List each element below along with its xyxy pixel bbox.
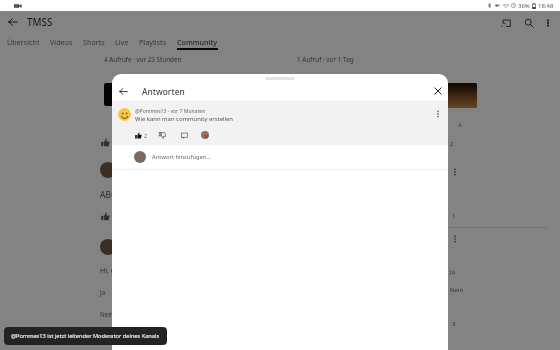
button[interactable]: Community [172, 33, 223, 52]
button[interactable]: Antwort hinzufügen... [112, 145, 448, 169]
button[interactable]: More options [540, 15, 555, 30]
staticText: Community [177, 37, 218, 47]
staticText: Videos [50, 37, 73, 47]
button[interactable]: Shorts [78, 33, 110, 52]
button[interactable]: Cast [498, 15, 513, 30]
staticText: @Pommes13 · vor 7 Monaten [135, 108, 206, 115]
staticText: 1 [452, 212, 456, 220]
staticText: Antworten [142, 86, 185, 97]
staticText: TMSS [27, 16, 53, 29]
staticText: Shorts [83, 37, 105, 47]
button[interactable]: Übersicht [2, 33, 45, 52]
staticText: Live [115, 37, 129, 47]
button[interactable]: Close [429, 82, 447, 100]
button[interactable]: More options [432, 108, 444, 120]
staticText: Antwort hinzufügen... [152, 153, 212, 161]
staticText: 31 Stimmen [100, 333, 135, 341]
button[interactable]: Videos [45, 33, 78, 52]
staticText: Wie kann man community erstellen [135, 115, 233, 123]
staticText: Ja [450, 268, 456, 276]
staticText: @Pommes13 ist jetzt leitender Moderator … [11, 332, 160, 340]
button[interactable]: Search [521, 15, 536, 30]
button[interactable]: Playlists [134, 33, 172, 52]
staticText: 36% [518, 2, 530, 10]
staticText: Übersicht [7, 37, 40, 47]
staticText: A [458, 121, 462, 129]
staticText: 2 [450, 140, 454, 148]
button[interactable]: @Pommes13 ist jetzt leitender Moderator … [4, 327, 167, 345]
button[interactable]: Back [114, 82, 132, 100]
staticText: Nein [450, 286, 464, 294]
staticText: TMSS · vor 4 Tagen [123, 166, 176, 174]
staticText: Hi, wie geht es euch? [100, 266, 169, 276]
staticText: Playlists [139, 37, 167, 47]
staticText: 18:48 [538, 2, 554, 10]
staticText: ABC [100, 189, 117, 201]
button[interactable]: Live [110, 33, 134, 52]
staticText: 3 [452, 320, 456, 328]
staticText: 1 Aufruf · vor 1 Tag [297, 55, 354, 64]
staticText: 4 Aufrufe · vor 23 Stunden [104, 55, 182, 64]
button[interactable]: Back [6, 15, 20, 29]
staticText: Ja [100, 288, 106, 296]
button[interactable]: @Pommes13 · vor 7 Monaten [112, 102, 448, 145]
staticText: 2 [144, 132, 147, 139]
staticText: Nein [100, 310, 114, 318]
staticText: 2 [115, 139, 119, 147]
